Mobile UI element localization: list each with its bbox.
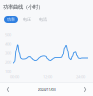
button[interactable]: Previous day (0, 83, 16, 96)
staticText: 功率 (7, 17, 15, 22)
staticText: 00:00 (10, 74, 19, 79)
staticText: 200 (5, 59, 11, 65)
button[interactable]: 电压 (23, 16, 31, 23)
staticText: 12:00 (43, 74, 52, 79)
staticText: 100 (5, 69, 11, 74)
staticText: 500 (5, 32, 11, 37)
staticText: 电压 (23, 17, 31, 22)
button[interactable]: Next day (77, 83, 93, 96)
staticText: 电流 (39, 17, 47, 22)
staticText: 功率曲线（小时） (3, 4, 43, 10)
staticText: 2024/11/03 (37, 87, 55, 92)
button[interactable]: 功率 (4, 16, 18, 23)
button[interactable]: 电流 (39, 16, 47, 23)
staticText: 300 (5, 50, 11, 56)
staticText: 400 (5, 41, 11, 46)
staticText: 24:00 (76, 74, 85, 79)
